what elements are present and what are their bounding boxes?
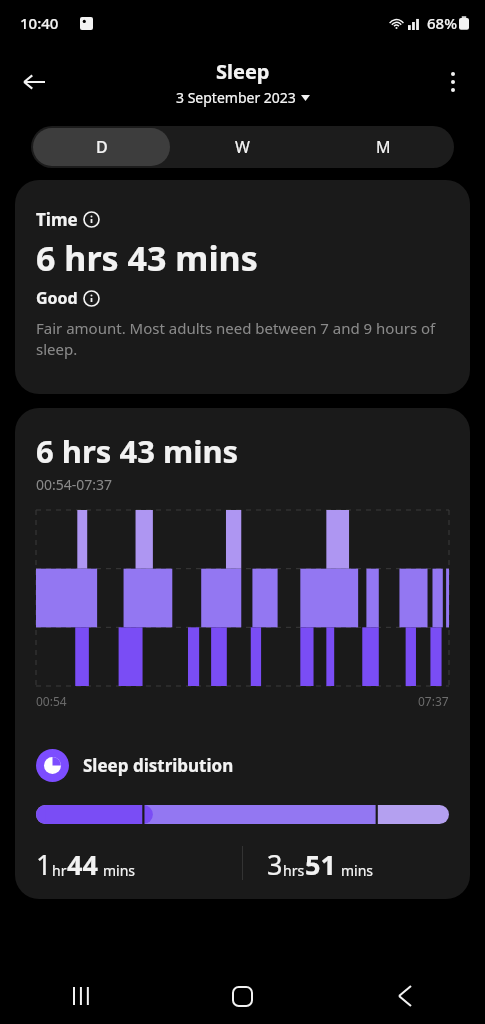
staticText: Sleep distribution <box>83 754 234 777</box>
button[interactable]: 6 hrs 43 mins <box>15 408 470 899</box>
staticText: hr <box>52 861 67 880</box>
staticText: Time <box>36 208 78 231</box>
button[interactable]: Sleep distribution <box>36 749 449 782</box>
staticText: 68% <box>427 13 457 33</box>
button[interactable]: Back <box>323 968 485 1024</box>
staticText: 51 <box>305 846 336 883</box>
staticText: Good <box>36 287 78 309</box>
button[interactable]: Time <box>15 180 470 394</box>
staticText: Sleep <box>216 58 270 85</box>
staticText: Fair amount. Most adults need between 7 … <box>36 318 449 360</box>
button[interactable]: Recent apps <box>0 968 161 1024</box>
button[interactable]: Home <box>161 968 323 1024</box>
staticText: 07:37 <box>418 693 449 709</box>
staticText: mins <box>103 861 136 880</box>
staticText: mins <box>341 861 374 880</box>
button[interactable]: M <box>315 128 452 166</box>
staticText: 1 <box>36 846 52 883</box>
button[interactable]: Back <box>10 58 58 106</box>
staticText: 00:54 <box>36 693 67 709</box>
staticText: 10:40 <box>20 13 59 33</box>
staticText: 6 hrs 43 mins <box>36 235 258 281</box>
staticText: 3 <box>267 846 283 883</box>
button[interactable]: W <box>174 128 311 166</box>
staticText: W <box>235 136 250 158</box>
staticText: 44 <box>67 846 98 883</box>
staticText: 00:54-07:37 <box>36 475 113 494</box>
staticText: D <box>96 136 108 158</box>
staticText: 6 hrs 43 mins <box>36 430 239 472</box>
staticText: hrs <box>283 861 305 880</box>
staticText: M <box>376 136 391 158</box>
staticText: 3 September 2023 <box>176 88 296 107</box>
button[interactable]: D <box>33 128 170 166</box>
button[interactable]: Sleep <box>170 56 316 109</box>
button[interactable]: More options <box>429 58 477 106</box>
